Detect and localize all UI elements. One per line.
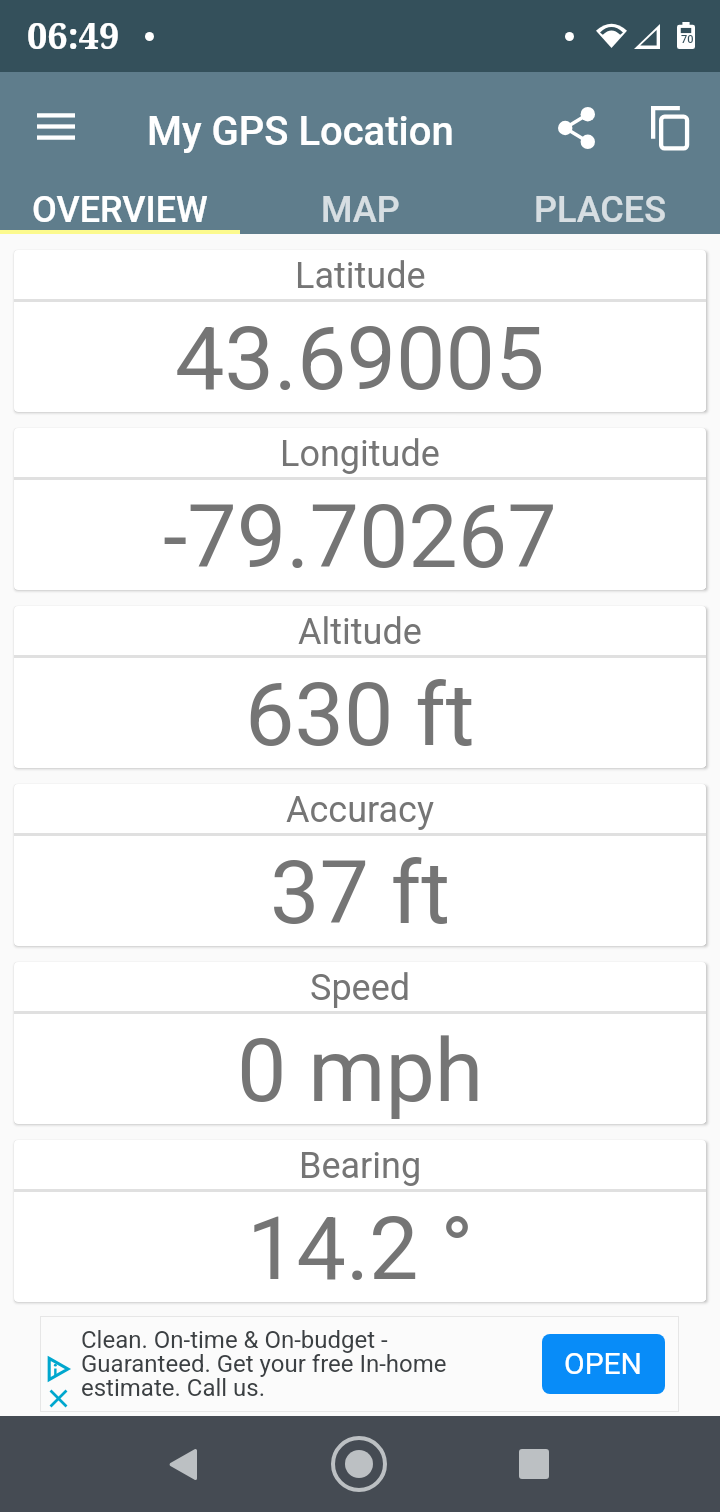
button[interactable]: Latitude (14, 250, 706, 412)
button[interactable]: OPEN (542, 1334, 665, 1394)
button[interactable]: Longitude (14, 428, 706, 590)
staticText: Latitude (295, 255, 426, 297)
button[interactable]: Open navigation menu (14, 84, 98, 168)
staticText: Clean. On-time & On-budget - Guaranteed.… (81, 1326, 542, 1402)
staticText: 70 (681, 33, 694, 46)
staticText: Bearing (299, 1145, 422, 1187)
button[interactable]: OVERVIEW (0, 184, 240, 234)
staticText: OVERVIEW (32, 189, 208, 231)
button[interactable]: Altitude (14, 606, 706, 768)
staticText: Accuracy (286, 789, 434, 831)
button[interactable]: Accuracy (14, 784, 706, 946)
button[interactable]: Recent apps (499, 1429, 569, 1499)
staticText: 0 mph (237, 1019, 484, 1122)
button[interactable]: Home (324, 1429, 394, 1499)
button[interactable]: Copy (628, 86, 712, 170)
staticText: Altitude (298, 611, 422, 653)
button[interactable]: Share (534, 86, 618, 170)
staticText: 06:49 (27, 11, 120, 60)
button[interactable]: Back (147, 1429, 217, 1499)
staticText: PLACES (534, 189, 666, 231)
staticText: MAP (321, 189, 400, 231)
button[interactable]: Clean. On-time & On-budget - Guaranteed.… (41, 1317, 678, 1411)
button[interactable]: Bearing (14, 1140, 706, 1302)
staticText: My GPS Location (147, 108, 454, 155)
staticText: -79.70267 (163, 485, 557, 588)
staticText: Speed (310, 967, 411, 1009)
staticText: 14.2 ° (247, 1197, 474, 1300)
button[interactable]: PLACES (480, 184, 720, 234)
button[interactable]: MAP (240, 184, 480, 234)
staticText: Longitude (280, 433, 440, 475)
staticText: OPEN (564, 1346, 643, 1381)
staticText: 37 ft (270, 841, 451, 944)
button[interactable]: Speed (14, 962, 706, 1124)
staticText: 43.69005 (175, 307, 545, 410)
staticText: 630 ft (245, 663, 475, 766)
